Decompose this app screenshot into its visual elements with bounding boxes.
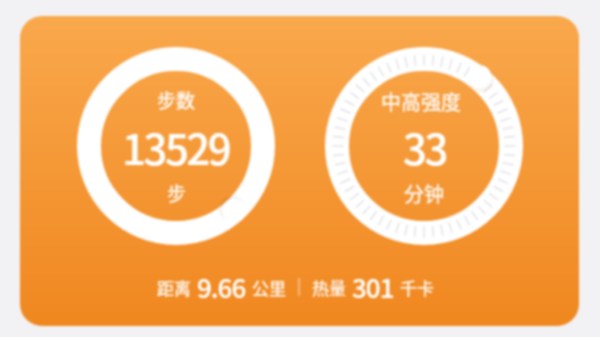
staticText: 13529 <box>122 116 230 177</box>
staticText: 分钟 <box>404 179 444 208</box>
staticText: 公里 <box>252 275 286 300</box>
staticText: 千卡 <box>400 275 434 300</box>
staticText: 热量 <box>312 275 346 300</box>
staticText: 中高强度 <box>381 87 461 116</box>
button[interactable] <box>325 47 523 245</box>
staticText: 301 <box>352 268 394 306</box>
staticText: 33 <box>403 116 446 177</box>
button[interactable]: 步数 <box>20 16 579 326</box>
button[interactable] <box>77 47 275 245</box>
staticText: 距离 <box>157 275 191 300</box>
staticText: 步 <box>167 179 187 207</box>
staticText: 9.66 <box>197 268 246 306</box>
staticText: 步数 <box>157 86 196 114</box>
